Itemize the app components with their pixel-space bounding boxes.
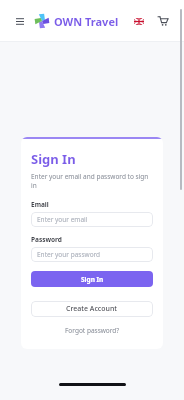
staticText: Create Account	[66, 304, 118, 314]
staticText: Sign In	[31, 150, 76, 168]
button[interactable]: Enter your password	[31, 247, 153, 262]
button[interactable]: Language	[131, 14, 147, 28]
staticText: Enter your email and password to sign in	[31, 172, 153, 190]
staticText: Password	[31, 235, 62, 244]
button[interactable]: Menu	[13, 14, 27, 28]
button[interactable]: Forgot password?	[60, 324, 125, 337]
button[interactable]: Cart	[155, 13, 171, 29]
button[interactable]: Enter your email	[31, 212, 153, 227]
staticText: Sign In	[81, 275, 104, 284]
button[interactable]: Sign In	[31, 271, 153, 287]
staticText: Enter your email	[37, 215, 88, 224]
button[interactable]: Create Account	[31, 301, 153, 317]
staticText: Enter your password	[37, 250, 101, 259]
staticText: Forgot password?	[65, 326, 120, 335]
staticText: OWN Travel	[54, 14, 119, 29]
staticText: Email	[31, 200, 49, 209]
